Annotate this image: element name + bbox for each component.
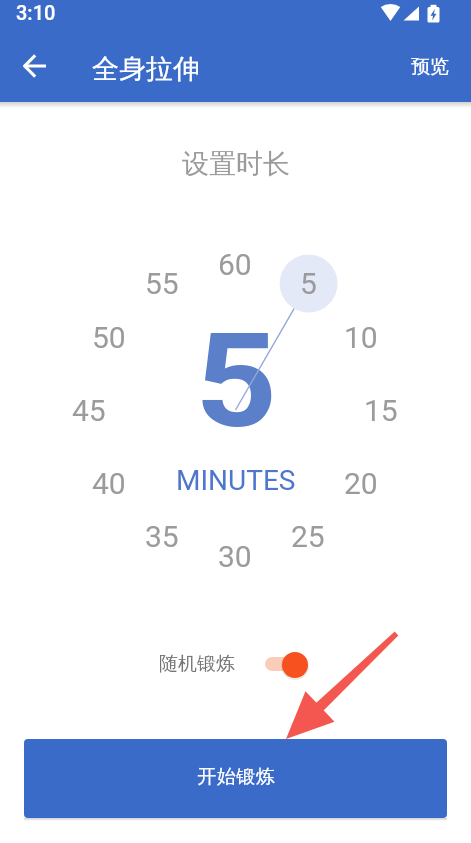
button[interactable]: 40 xyxy=(74,460,144,506)
staticText: 30 xyxy=(218,539,252,574)
staticText: 全身拉伸 xyxy=(92,52,200,86)
staticText: 开始锻炼 xyxy=(197,765,275,789)
button[interactable]: 5 xyxy=(273,260,343,306)
staticText: 60 xyxy=(218,247,252,282)
button[interactable]: 35 xyxy=(127,513,197,559)
button[interactable]: 60 xyxy=(200,241,270,287)
staticText: 20 xyxy=(344,466,378,501)
staticText: 35 xyxy=(145,519,179,554)
button[interactable]: 45 xyxy=(54,387,124,433)
button[interactable]: 30 xyxy=(200,533,270,579)
button[interactable]: 50 xyxy=(74,314,144,360)
staticText: 25 xyxy=(291,519,325,554)
button[interactable]: 25 xyxy=(273,513,343,559)
button[interactable]: 预览 xyxy=(398,45,462,89)
button[interactable]: 20 xyxy=(326,460,396,506)
button[interactable]: 15 xyxy=(346,387,416,433)
button[interactable]: 随机锻炼 xyxy=(145,640,320,690)
staticText: 40 xyxy=(92,466,126,501)
staticText: 随机锻炼 xyxy=(159,652,235,676)
staticText: 预览 xyxy=(411,55,449,79)
staticText: 设置时长 xyxy=(182,147,290,181)
staticText: 5 xyxy=(300,266,317,301)
staticText: 45 xyxy=(72,393,106,428)
button[interactable]: 开始锻炼 xyxy=(24,739,447,818)
staticText: 50 xyxy=(92,320,126,355)
staticText: MINUTES xyxy=(176,464,296,497)
staticText: 10 xyxy=(344,320,378,355)
staticText: 55 xyxy=(145,266,179,301)
button[interactable]: 10 xyxy=(326,314,396,360)
staticText: 5 xyxy=(195,306,278,457)
button[interactable]: 55 xyxy=(127,260,197,306)
button[interactable] xyxy=(11,42,59,90)
staticText: 15 xyxy=(364,393,398,428)
staticText: 3:10 xyxy=(16,1,56,24)
